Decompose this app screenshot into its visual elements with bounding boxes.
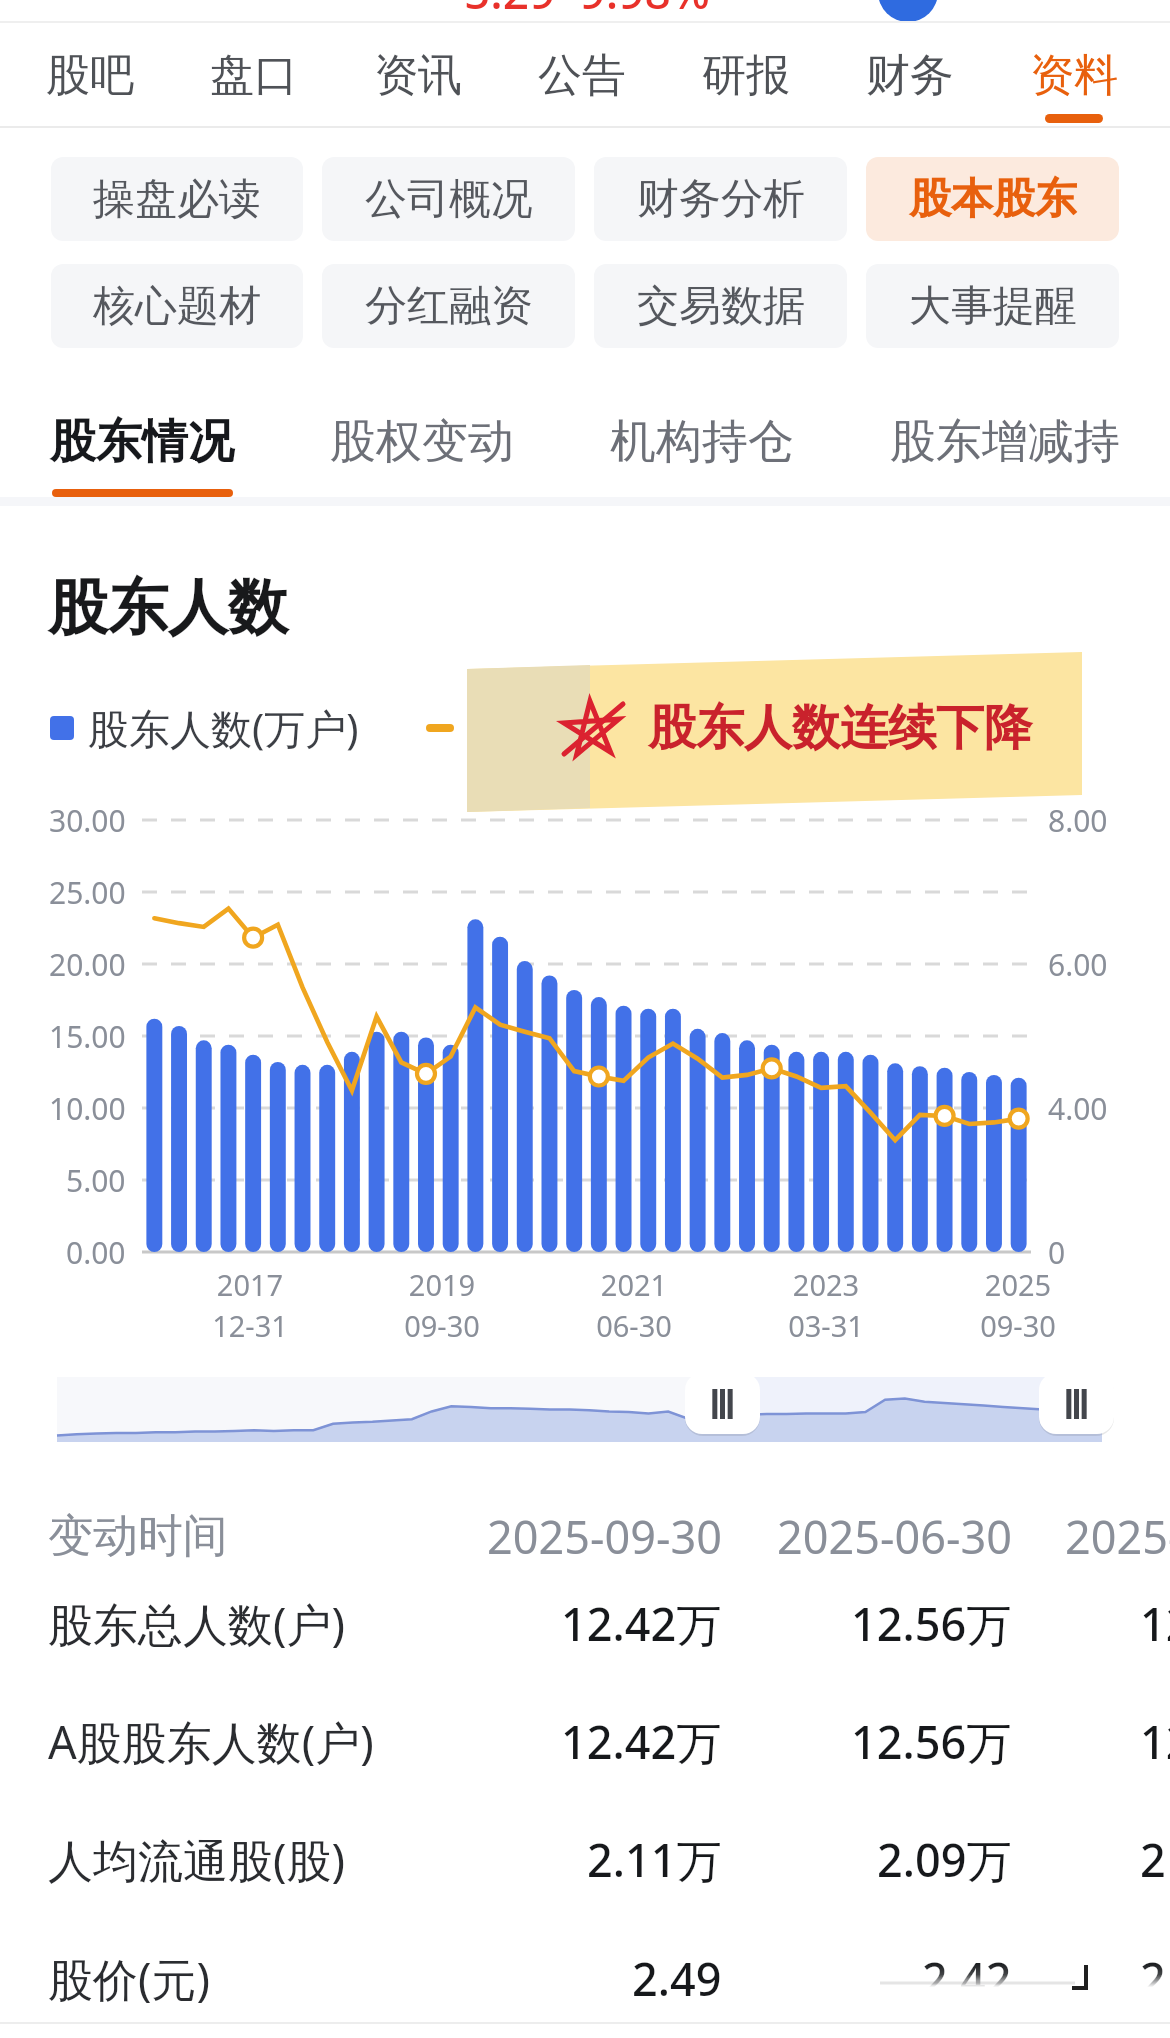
button[interactable]: 核心题材	[51, 264, 303, 348]
staticText: 股东总人数(户)	[48, 1593, 346, 1654]
staticText: 公司概况	[365, 173, 533, 226]
staticText: 10.00	[49, 1088, 126, 1129]
staticText: 大事提醒	[909, 280, 1077, 333]
staticText: 30.00	[49, 800, 126, 841]
staticText: 15.00	[49, 1016, 126, 1057]
button[interactable]: 盘口	[184, 23, 324, 128]
button[interactable]: 大事提醒	[866, 264, 1119, 348]
staticText: 股东人数	[48, 570, 288, 646]
staticText: 人均流通股(股)	[48, 1829, 346, 1890]
button[interactable]: 分红融资	[322, 264, 575, 348]
staticText: 分红融资	[365, 280, 533, 333]
staticText: 股本股东	[909, 173, 1077, 226]
staticText: 0.00	[66, 1232, 126, 1273]
button[interactable]: Adjust range start	[685, 1373, 760, 1434]
staticText: 资讯	[374, 48, 462, 103]
staticText: 变动时间	[48, 1508, 228, 1565]
staticText: 25.00	[49, 872, 126, 913]
staticText: 12	[1140, 1593, 1170, 1654]
staticText: 操盘必读	[93, 173, 261, 226]
staticText: 公告	[538, 48, 626, 103]
staticText: 0	[1048, 1232, 1066, 1273]
staticText: 2017 12-31	[212, 1265, 288, 1346]
button[interactable]: 操盘必读	[51, 157, 303, 241]
staticText: 股价(元)	[468, 700, 616, 756]
button[interactable]: 公告	[512, 23, 652, 128]
button[interactable]: 财务分析	[594, 157, 847, 241]
staticText: 交易数据	[637, 280, 805, 333]
staticText: 2025-	[1065, 1506, 1170, 1567]
button[interactable]: 公司概况	[322, 157, 575, 241]
staticText: 盘口	[210, 48, 298, 103]
staticText: 2.42	[922, 1948, 1012, 2009]
staticText: 8.00	[1048, 800, 1108, 841]
staticText: 12	[1140, 1711, 1170, 1772]
staticText: 股东增减持	[890, 413, 1120, 471]
button[interactable]: 股吧	[20, 23, 160, 128]
button[interactable]: 股东情况	[36, 405, 248, 497]
staticText: 20.00	[49, 944, 126, 985]
button[interactable]: 股东增减持	[876, 405, 1134, 497]
staticText: 股东情况	[50, 413, 234, 471]
staticText: 资料	[1030, 48, 1118, 103]
button[interactable]: 股本股东	[866, 157, 1119, 241]
staticText: 2023 03-31	[788, 1265, 864, 1346]
staticText: A股股东人数(户)	[48, 1711, 374, 1772]
staticText: 2	[1140, 1948, 1166, 2009]
staticText: 财务	[866, 48, 954, 103]
staticText: 2.11万	[587, 1829, 722, 1890]
button[interactable]: Adjust range end	[1039, 1373, 1114, 1434]
staticText: 2021 06-30	[596, 1265, 672, 1346]
staticText: 12.42万	[561, 1593, 722, 1654]
button[interactable]: 交易数据	[594, 264, 847, 348]
staticText: 5.00	[66, 1160, 126, 1201]
staticText: 2.49	[632, 1948, 722, 2009]
staticText: 2.09万	[877, 1829, 1012, 1890]
staticText: 股吧	[46, 48, 134, 103]
staticText: 财务分析	[637, 173, 805, 226]
staticText: 2025 09-30	[980, 1265, 1056, 1346]
staticText: 2019 09-30	[404, 1265, 480, 1346]
staticText: 研报	[702, 48, 790, 103]
button[interactable]: 机构持仓	[596, 405, 808, 497]
staticText: 2025-06-30	[777, 1506, 1012, 1567]
staticText: 股东人数连续下降	[648, 698, 1032, 758]
button[interactable]: 研报	[676, 23, 816, 128]
staticText: 12.42万	[561, 1711, 722, 1772]
staticText: 2	[1140, 1829, 1166, 1890]
staticText: 4.00	[1048, 1088, 1108, 1129]
staticText: 12.56万	[851, 1593, 1012, 1654]
staticText: 股权变动	[330, 413, 514, 471]
staticText: 核心题材	[93, 280, 261, 333]
staticText: 6.00	[1048, 944, 1108, 985]
button[interactable]: 资讯	[348, 23, 488, 128]
staticText: 股东人数(万户)	[88, 700, 359, 756]
staticText: 股价(元)	[48, 1948, 211, 2009]
button[interactable]: 财务	[840, 23, 980, 128]
staticText: 2025-09-30	[487, 1506, 722, 1567]
staticText: 机构持仓	[610, 413, 794, 471]
button[interactable]: 股权变动	[316, 405, 528, 497]
button[interactable]: 资料	[1004, 23, 1144, 128]
staticText: 12.56万	[851, 1711, 1012, 1772]
